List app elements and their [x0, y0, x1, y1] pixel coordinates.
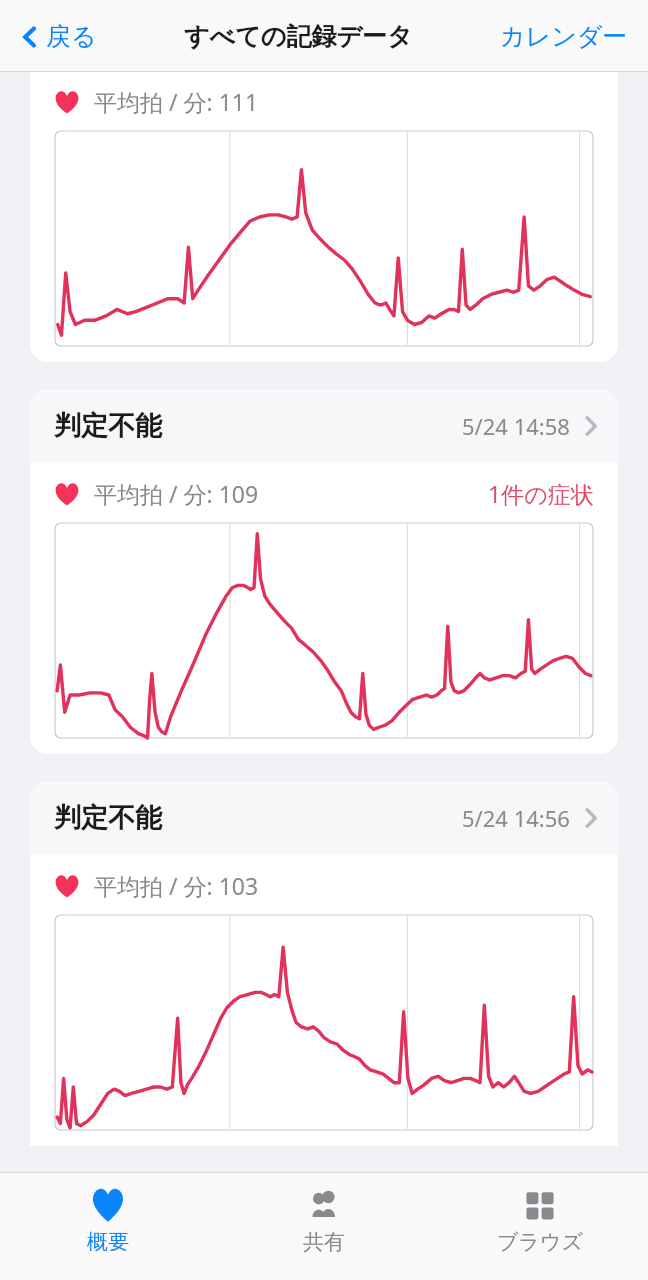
button[interactable]: 戻る — [16, 15, 101, 58]
staticText: 5/24 14:56 — [462, 803, 570, 833]
staticText: 平均拍 / 分: 111 — [94, 86, 259, 117]
button[interactable]: ブラウズ — [432, 1173, 648, 1280]
staticText: 平均拍 / 分: 103 — [94, 870, 259, 901]
staticText: 共有 — [303, 1229, 345, 1255]
staticText: ブラウズ — [497, 1229, 583, 1255]
button[interactable]: 判定不能 — [30, 390, 618, 754]
button[interactable]: 共有 — [216, 1173, 432, 1280]
staticText: 概要 — [87, 1229, 129, 1255]
staticText: 平均拍 / 分: 109 — [94, 478, 259, 509]
staticText: すべての記録データ — [184, 21, 413, 52]
staticText: 1件の症状 — [488, 478, 594, 509]
button[interactable]: 判定不能 — [30, 782, 618, 1146]
button[interactable]: 平均拍 / 分: 111 — [30, 72, 618, 362]
staticText: 判定不能 — [54, 409, 162, 443]
button[interactable]: カレンダー — [496, 15, 632, 58]
staticText: 5/24 14:58 — [462, 411, 570, 441]
staticText: 戻る — [46, 21, 97, 52]
button[interactable]: 概要 — [0, 1173, 216, 1280]
staticText: カレンダー — [500, 21, 628, 52]
other: 詳細を表示 — [584, 413, 598, 439]
staticText: 判定不能 — [54, 801, 162, 835]
other: 詳細を表示 — [584, 805, 598, 831]
